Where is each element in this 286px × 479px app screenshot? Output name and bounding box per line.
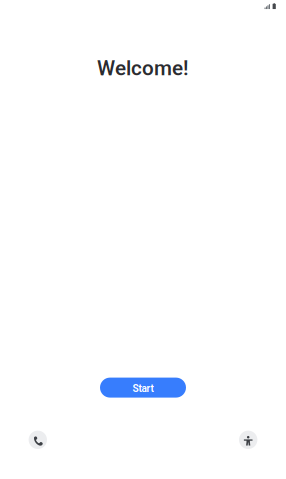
staticText: Welcome! — [97, 56, 189, 80]
button[interactable]: Call — [29, 431, 47, 449]
button[interactable]: Start — [100, 378, 186, 398]
staticText: Start — [132, 383, 153, 395]
button[interactable]: Accessibility — [239, 431, 257, 449]
